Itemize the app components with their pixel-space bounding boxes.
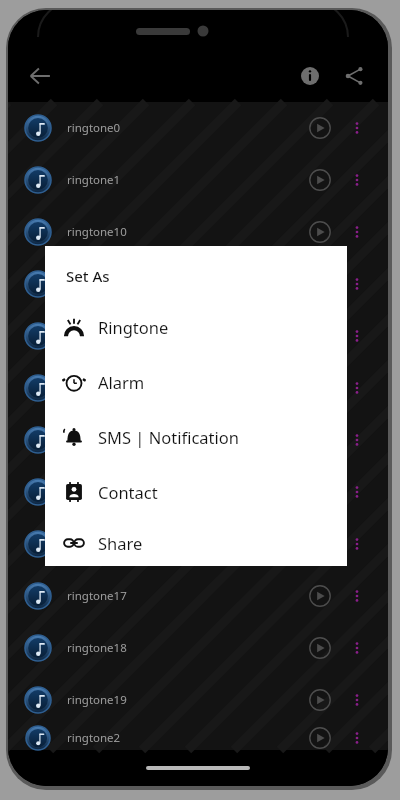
button[interactable]: Play ringtone18: [300, 628, 340, 668]
staticText: ringtone17: [67, 588, 300, 604]
staticText: ringtone13: [67, 380, 300, 396]
button[interactable]: ringtone12: [8, 310, 388, 362]
button[interactable]: More options: [340, 319, 374, 353]
button[interactable]: More options: [340, 215, 374, 249]
staticText: ringtone18: [67, 640, 300, 656]
button[interactable]: More options: [340, 371, 374, 405]
staticText: ringtone0: [67, 120, 300, 136]
button[interactable]: Play ringtone10: [300, 212, 340, 252]
staticText: Set As: [66, 266, 110, 286]
staticText: ringtone10: [67, 224, 300, 240]
button[interactable]: ringtone10: [8, 206, 388, 258]
button[interactable]: More options: [340, 423, 374, 457]
staticText: ringtone16: [67, 536, 300, 552]
button[interactable]: ringtone15: [8, 466, 388, 518]
staticText: ringtone12: [67, 328, 300, 344]
button[interactable]: More options: [340, 163, 374, 197]
button[interactable]: More options: [340, 726, 374, 750]
button[interactable]: More options: [340, 579, 374, 613]
staticText: Contact: [98, 481, 158, 503]
button[interactable]: ringtone17: [8, 570, 388, 622]
staticText: ringtone1: [67, 172, 300, 188]
staticText: SMS | Notification: [98, 426, 239, 448]
button[interactable]: More options: [340, 527, 374, 561]
button[interactable]: Play ringtone0: [300, 108, 340, 148]
button[interactable]: Info: [288, 54, 332, 98]
button[interactable]: ringtone13: [8, 362, 388, 414]
button[interactable]: Share: [332, 54, 376, 98]
staticText: Share: [98, 532, 143, 554]
button[interactable]: More options: [340, 267, 374, 301]
button[interactable]: ringtone11: [8, 258, 388, 310]
button[interactable]: ringtone19: [8, 674, 388, 726]
button[interactable]: Share: [45, 519, 347, 566]
button[interactable]: Ringtone: [45, 299, 347, 354]
staticText: ringtone19: [67, 692, 300, 708]
staticText: ringtone11: [67, 276, 300, 292]
button[interactable]: ringtone2: [8, 726, 388, 750]
button[interactable]: ringtone16: [8, 518, 388, 570]
button[interactable]: Back: [18, 54, 62, 98]
button[interactable]: ringtone0: [8, 102, 388, 154]
button[interactable]: Play ringtone1: [300, 160, 340, 200]
button[interactable]: SMS | Notification: [45, 409, 347, 464]
button[interactable]: Play ringtone17: [300, 576, 340, 616]
staticText: ringtone14: [67, 432, 300, 448]
staticText: ringtone15: [67, 484, 300, 500]
button[interactable]: More options: [340, 475, 374, 509]
button[interactable]: Play ringtone19: [300, 680, 340, 720]
button[interactable]: Alarm: [45, 354, 347, 409]
button[interactable]: ringtone1: [8, 154, 388, 206]
button[interactable]: More options: [340, 631, 374, 665]
staticText: Alarm: [98, 371, 145, 393]
staticText: ringtone2: [67, 730, 300, 746]
button[interactable]: Play ringtone2: [300, 726, 340, 750]
button[interactable]: ringtone18: [8, 622, 388, 674]
button[interactable]: Contact: [45, 464, 347, 519]
button[interactable]: More options: [340, 111, 374, 145]
button[interactable]: More options: [340, 683, 374, 717]
staticText: Ringtone: [98, 316, 169, 338]
button[interactable]: ringtone14: [8, 414, 388, 466]
